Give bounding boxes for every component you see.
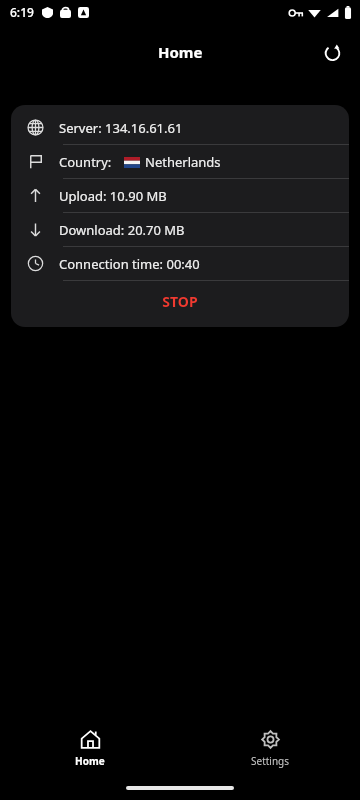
- staticText: Home: [158, 42, 203, 62]
- button[interactable]: Home: [0, 723, 180, 774]
- staticText: Server: 134.16.61.61: [59, 119, 183, 137]
- staticText: Netherlands: [145, 153, 221, 171]
- button[interactable]: STOP: [11, 281, 349, 321]
- button[interactable]: Settings: [180, 723, 360, 774]
- button[interactable]: Connection time: 00:40: [11, 247, 349, 280]
- staticText: Home: [75, 754, 105, 768]
- staticText: Download: 20.70 MB: [59, 221, 185, 239]
- button[interactable]: Refresh: [312, 32, 352, 72]
- staticText: 6:19: [10, 4, 34, 20]
- staticText: STOP: [162, 292, 198, 311]
- button[interactable]: Download: 20.70 MB: [11, 213, 349, 246]
- button[interactable]: Country:: [11, 145, 349, 178]
- staticText: Country:: [59, 153, 112, 171]
- staticText: Settings: [251, 754, 290, 768]
- button[interactable]: Server: 134.16.61.61: [11, 111, 349, 144]
- button[interactable]: Upload: 10.90 MB: [11, 179, 349, 212]
- staticText: Connection time: 00:40: [59, 255, 200, 273]
- staticText: Upload: 10.90 MB: [59, 187, 167, 205]
